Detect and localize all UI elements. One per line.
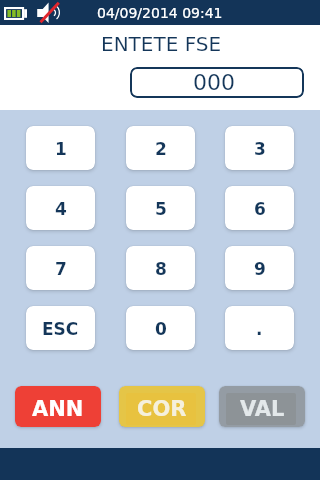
staticText: 0 [155, 319, 167, 339]
button[interactable]: 2 [126, 126, 195, 170]
staticText: 8 [155, 259, 167, 279]
staticText: ENTETE FSE [101, 32, 222, 55]
staticText: ESC [42, 319, 79, 339]
button[interactable]: 1 [26, 126, 95, 170]
staticText: 7 [55, 259, 67, 279]
button[interactable]: 6 [225, 186, 294, 230]
staticText: 9 [254, 259, 266, 279]
other: Battery [4, 7, 27, 20]
staticText: ANN [32, 397, 84, 421]
staticText: 000 [193, 70, 235, 96]
staticText: 5 [155, 199, 167, 219]
staticText: 3 [254, 139, 266, 159]
button[interactable]: ESC [26, 306, 95, 350]
staticText: VAL [240, 397, 285, 421]
button[interactable]: 5 [126, 186, 195, 230]
button[interactable]: . [225, 306, 294, 350]
button[interactable]: VAL [219, 386, 305, 427]
staticText: . [256, 319, 263, 339]
button[interactable]: 7 [26, 246, 95, 290]
staticText: 04/09/2014 09:41 [97, 5, 223, 21]
staticText: 2 [155, 139, 167, 159]
other: Sound muted [36, 1, 60, 24]
button[interactable]: COR [119, 386, 205, 427]
staticText: COR [137, 397, 187, 421]
button[interactable]: 9 [225, 246, 294, 290]
button[interactable]: ANN [15, 386, 101, 427]
button[interactable]: 8 [126, 246, 195, 290]
staticText: 4 [55, 199, 67, 219]
button[interactable]: 4 [26, 186, 95, 230]
button[interactable]: 000 [130, 67, 304, 98]
staticText: 6 [254, 199, 266, 219]
staticText: 1 [55, 139, 67, 159]
button[interactable]: 3 [225, 126, 294, 170]
button[interactable]: 0 [126, 306, 195, 350]
